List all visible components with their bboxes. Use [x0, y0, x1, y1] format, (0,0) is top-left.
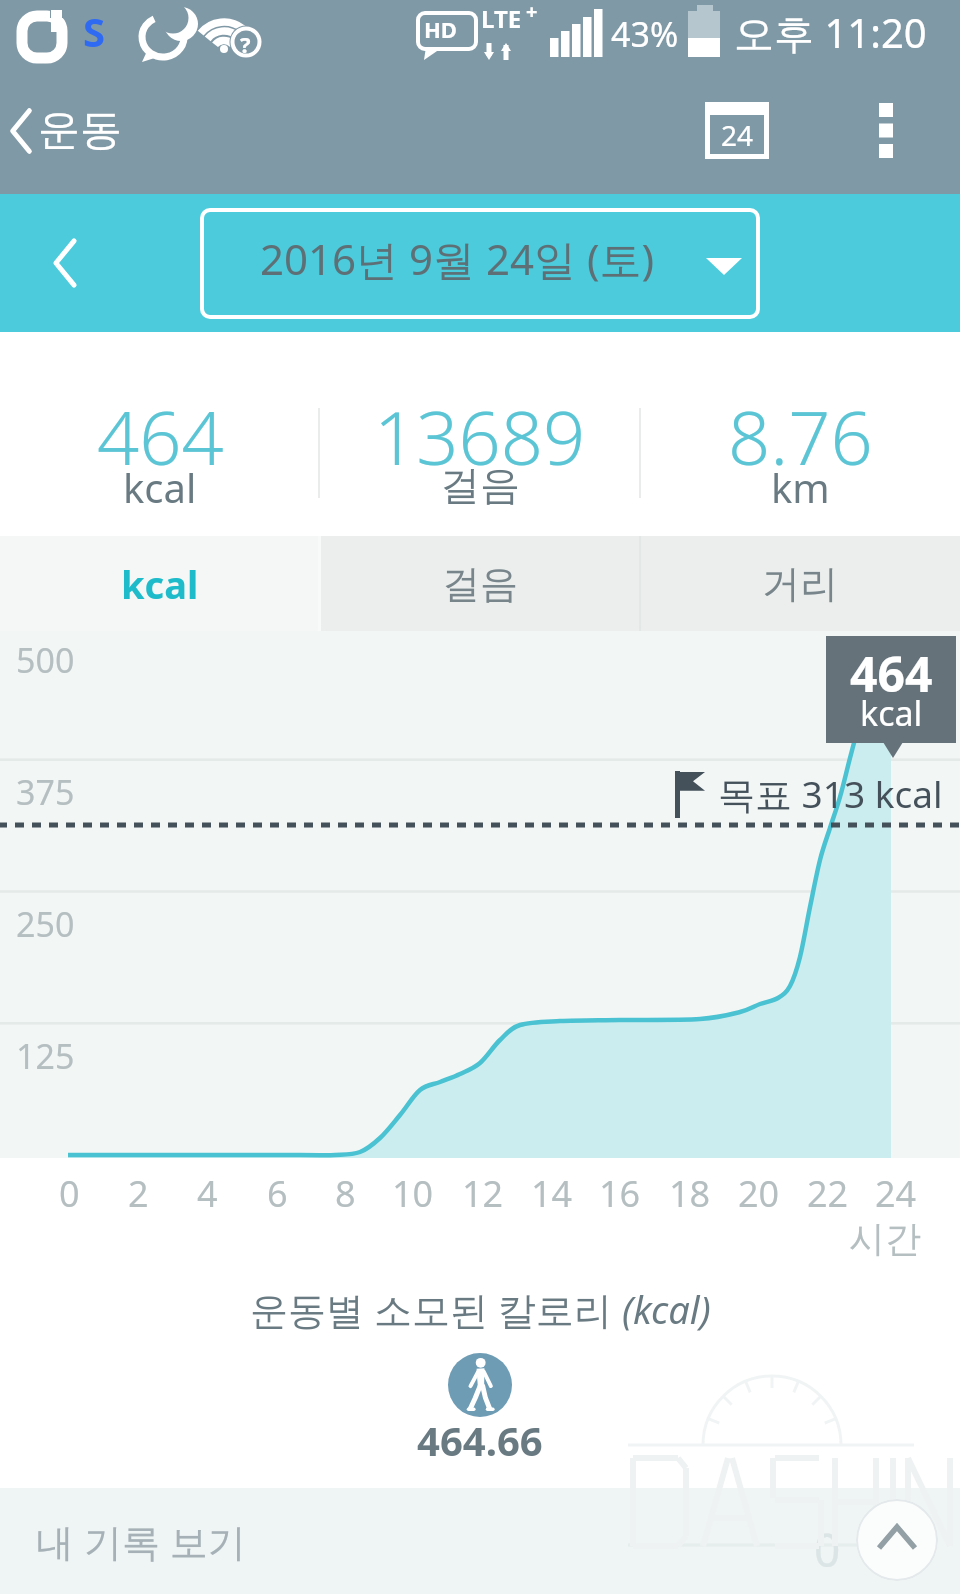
staticText: HD	[424, 14, 457, 44]
button[interactable]: 2016년 9월 24일 (토)	[200, 208, 760, 319]
staticText: 2	[128, 1169, 149, 1218]
staticText: km	[771, 460, 830, 514]
staticText: kcal	[860, 690, 923, 736]
staticText: 8.76	[728, 386, 873, 487]
staticText: 걸음	[442, 560, 518, 608]
staticText: 250	[16, 901, 75, 947]
staticText: kcal	[123, 460, 197, 514]
button[interactable]: Walking	[448, 1353, 512, 1417]
staticText: 43%	[611, 11, 679, 57]
staticText: (kcal)	[622, 1283, 711, 1335]
staticText: 10	[392, 1169, 434, 1218]
button[interactable]: 내 기록 보기	[0, 1488, 960, 1594]
staticText: 목표 313 kcal	[718, 768, 943, 819]
staticText: 464.66	[417, 1413, 543, 1467]
button[interactable]: More options	[843, 80, 929, 181]
staticText: 14	[531, 1169, 573, 1218]
staticText: 18	[669, 1169, 711, 1218]
staticText: 125	[16, 1033, 75, 1079]
staticText: 오후 11:20	[734, 5, 927, 60]
staticText: 375	[16, 769, 75, 815]
staticText: 500	[16, 637, 75, 683]
staticText: 0	[59, 1169, 80, 1218]
staticText: 내 기록 보기	[36, 1515, 246, 1567]
staticText: 걸음	[440, 460, 520, 510]
staticText: 464	[97, 386, 224, 487]
staticText: 16	[599, 1169, 641, 1218]
staticText: 시간	[849, 1216, 921, 1261]
staticText: 24	[875, 1169, 917, 1218]
button[interactable]: 걸음	[320, 536, 640, 631]
staticText: 운동	[38, 104, 122, 157]
staticText: 20	[738, 1169, 780, 1218]
staticText: 24	[721, 116, 754, 154]
button[interactable]: Calendar, day 24	[683, 80, 791, 181]
staticText: 0	[814, 1518, 841, 1581]
button[interactable]: Previous day	[0, 194, 130, 332]
staticText: ?	[240, 29, 251, 59]
staticText: 운동별 소모된 칼로리	[250, 1283, 622, 1335]
staticText: 13689	[374, 386, 586, 487]
staticText: 8	[335, 1169, 356, 1218]
button[interactable]: kcal	[0, 536, 320, 631]
staticText: 6	[267, 1169, 288, 1218]
staticText: 12	[462, 1169, 504, 1218]
staticText: +	[526, 0, 538, 25]
staticText: 4	[197, 1169, 218, 1218]
staticText: 22	[807, 1169, 849, 1218]
staticText: LTE	[481, 2, 522, 35]
button[interactable]: 거리	[640, 536, 960, 631]
button[interactable]: 13689	[320, 332, 640, 536]
button[interactable]: 8.76	[640, 332, 960, 536]
staticText: 464	[850, 641, 933, 706]
staticText: 2016년 9월 24일 (토)	[260, 230, 655, 287]
button[interactable]: 464	[0, 332, 320, 536]
button[interactable]: 운동	[0, 67, 140, 194]
staticText: S	[83, 4, 106, 58]
staticText: 거리	[762, 560, 838, 608]
staticText: kcal	[121, 558, 199, 610]
button[interactable]: Expand	[856, 1499, 938, 1581]
